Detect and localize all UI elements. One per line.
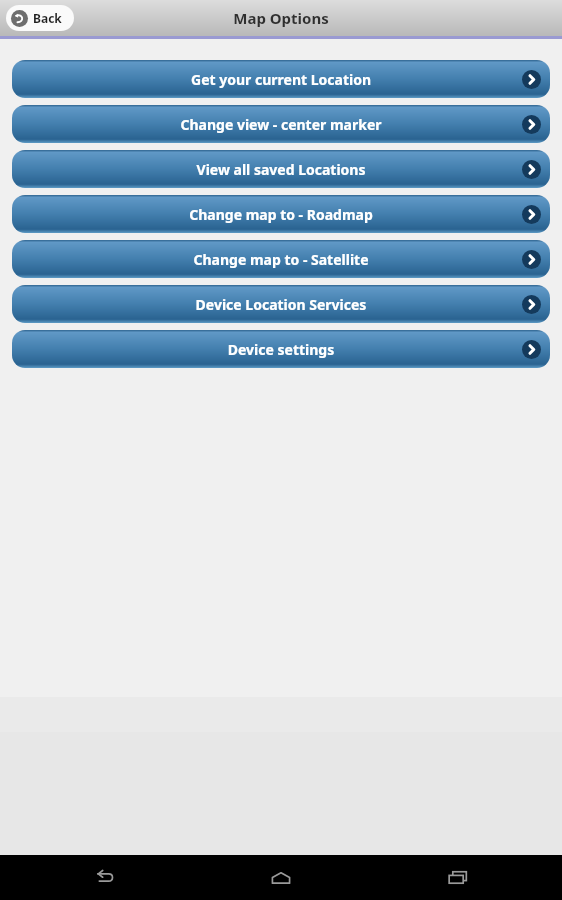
- button[interactable]: View all saved Locations: [12, 150, 550, 188]
- button[interactable]: Change map to - Roadmap: [12, 195, 550, 233]
- staticText: Change view - center marker: [50, 115, 512, 134]
- button[interactable]: Get your current Location: [12, 60, 550, 98]
- staticText: View all saved Locations: [50, 160, 512, 179]
- staticText: Change map to - Satellite: [50, 250, 512, 269]
- staticText: Change map to - Roadmap: [50, 205, 512, 224]
- staticText: Device Location Services: [50, 295, 512, 314]
- button[interactable]: Back: [80, 855, 128, 900]
- staticText: Get your current Location: [50, 70, 512, 89]
- staticText: Map Options: [0, 8, 562, 28]
- button[interactable]: Device settings: [12, 330, 550, 368]
- staticText: Back: [33, 10, 62, 26]
- button[interactable]: Back: [6, 5, 74, 31]
- button[interactable]: Device Location Services: [12, 285, 550, 323]
- button[interactable]: Change view - center marker: [12, 105, 550, 143]
- staticText: Device settings: [50, 340, 512, 359]
- button[interactable]: Change map to - Satellite: [12, 240, 550, 278]
- button[interactable]: Home: [257, 855, 305, 900]
- button[interactable]: Recent apps: [434, 855, 482, 900]
